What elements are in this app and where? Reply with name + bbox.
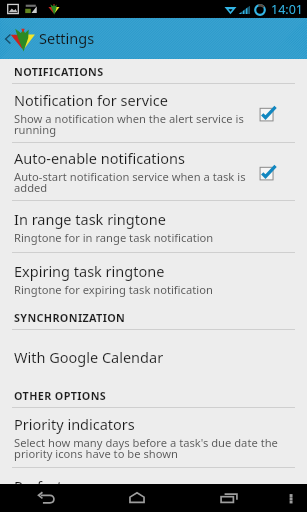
- staticText: Select how many days before a task's due…: [14, 435, 283, 461]
- button[interactable]: Home: [91, 484, 183, 512]
- staticText: OTHER OPTIONS: [14, 388, 107, 403]
- staticText: Notification for service: [14, 90, 168, 110]
- staticText: Auto-enable notifications: [14, 148, 185, 168]
- button[interactable]: Recent apps: [183, 484, 275, 512]
- button[interactable]: Priority indicators: [0, 408, 307, 468]
- button[interactable]: Auto-enable notifications: [0, 143, 307, 201]
- button[interactable]: In range task ringtone: [0, 201, 307, 253]
- staticText: Priority indicators: [14, 414, 135, 434]
- staticText: In range task ringtone: [14, 209, 166, 229]
- other: Toggle: [259, 163, 277, 181]
- staticText: 14:01: [271, 1, 303, 18]
- button[interactable]: Notification for service: [0, 84, 307, 143]
- staticText: Ringtone for expiring task notification: [14, 282, 213, 297]
- staticText: Ringtone for in range task notification: [14, 230, 214, 245]
- other: Navigate up: [2, 33, 14, 45]
- staticText: NOTIFICATIONS: [14, 64, 104, 79]
- button[interactable]: With Google Calendar: [0, 330, 307, 383]
- staticText: Perfect: [14, 476, 63, 484]
- button[interactable]: More options: [275, 484, 307, 512]
- button[interactable]: Perfect: [0, 468, 307, 484]
- button[interactable]: Expiring task ringtone: [0, 253, 307, 305]
- staticText: Expiring task ringtone: [14, 261, 165, 281]
- button[interactable]: Back: [0, 484, 91, 512]
- staticText: Show a notification when the alert servi…: [14, 111, 251, 137]
- staticText: Settings: [39, 28, 95, 48]
- staticText: With Google Calendar: [14, 347, 164, 367]
- staticText: Auto-start notification service when a t…: [14, 169, 251, 195]
- staticText: SYNCHRONIZATION: [14, 310, 126, 325]
- other: Toggle: [259, 104, 277, 122]
